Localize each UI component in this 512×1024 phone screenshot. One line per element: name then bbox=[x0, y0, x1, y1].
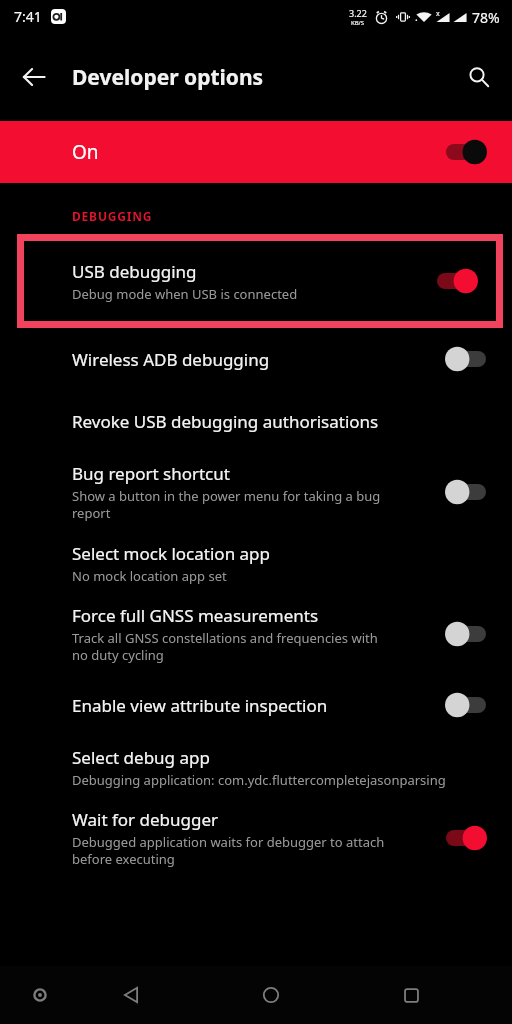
staticText: Select debug app bbox=[72, 746, 210, 769]
staticText: 7:41 bbox=[14, 7, 42, 26]
staticText: Wait for debugger bbox=[72, 808, 219, 831]
button[interactable]: Recents bbox=[390, 974, 432, 1016]
button[interactable]: Assistant bbox=[22, 977, 58, 1013]
button[interactable]: Back bbox=[110, 974, 152, 1016]
staticText: Revoke USB debugging authorisations bbox=[72, 410, 379, 433]
staticText: Show a button in the power menu for taki… bbox=[72, 487, 381, 522]
staticText: USB debugging bbox=[72, 260, 197, 283]
staticText: On bbox=[72, 139, 99, 165]
staticText: Debugged application waits for debugger … bbox=[72, 833, 385, 868]
button[interactable]: Enable view attribute inspection bbox=[0, 674, 512, 736]
staticText: 78% bbox=[472, 8, 500, 27]
staticText: DEBUGGING bbox=[72, 208, 153, 224]
button[interactable]: Wireless ADB debugging bbox=[0, 328, 512, 390]
button[interactable]: Wait for debugger bbox=[0, 798, 512, 878]
staticText: Enable view attribute inspection bbox=[72, 694, 328, 717]
staticText: Force full GNSS measurements bbox=[72, 604, 319, 627]
button[interactable]: Select debug app bbox=[0, 736, 512, 798]
staticText: No mock location app set bbox=[72, 567, 227, 585]
button[interactable]: Back bbox=[11, 54, 57, 100]
button[interactable]: Search bbox=[456, 54, 502, 100]
staticText: x bbox=[436, 9, 440, 19]
button[interactable]: Bug report shortcut bbox=[0, 452, 512, 532]
staticText: Debugging application: com.ydc.flutterco… bbox=[72, 771, 446, 789]
staticText: Bug report shortcut bbox=[72, 462, 230, 485]
button[interactable]: On bbox=[0, 121, 512, 183]
staticText: Wireless ADB debugging bbox=[72, 348, 270, 371]
staticText: KB/S bbox=[351, 19, 365, 27]
staticText: Debug mode when USB is connected bbox=[72, 285, 298, 303]
button[interactable]: Home bbox=[250, 974, 292, 1016]
button[interactable]: Revoke USB debugging authorisations bbox=[0, 390, 512, 452]
button[interactable]: USB debugging bbox=[24, 241, 496, 321]
staticText: Select mock location app bbox=[72, 542, 270, 565]
button[interactable]: Force full GNSS measurements bbox=[0, 594, 512, 674]
staticText: 3.22 bbox=[349, 7, 367, 19]
button[interactable]: Select mock location app bbox=[0, 532, 512, 594]
staticText: Track all GNSS constellations and freque… bbox=[72, 629, 378, 664]
staticText: Developer options bbox=[72, 63, 264, 92]
